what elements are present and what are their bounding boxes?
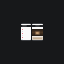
button[interactable]: Header [21, 25, 31, 27]
button[interactable]: Top app bar [32, 25, 43, 27]
button[interactable]: Header [21, 24, 31, 40]
button[interactable] [21, 28, 31, 30]
button[interactable] [21, 32, 31, 34]
button[interactable] [21, 30, 31, 32]
button[interactable]: Top app bar [32, 24, 43, 40]
button[interactable] [21, 36, 31, 38]
button[interactable] [32, 37, 43, 40]
button[interactable]: Photo [32, 29, 43, 36]
button[interactable] [21, 34, 31, 36]
button[interactable] [21, 38, 31, 40]
